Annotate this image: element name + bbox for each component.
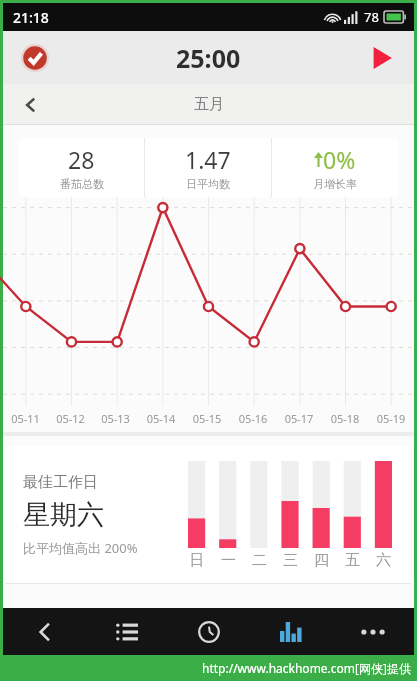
staticText: 28 <box>68 144 95 175</box>
button[interactable]: 28 <box>19 138 144 197</box>
button[interactable]: Timer <box>168 608 250 655</box>
button[interactable]: Pomodoro <box>13 36 57 80</box>
staticText: 日平均数 <box>186 177 230 191</box>
button[interactable]: Statistics <box>250 608 332 655</box>
staticText: 05-15 <box>184 411 230 426</box>
button[interactable]: List <box>86 608 168 655</box>
staticText: 五月 <box>194 95 224 114</box>
staticText: 月增长率 <box>313 177 357 191</box>
button[interactable]: More <box>332 608 414 655</box>
button[interactable]: Start timer <box>360 36 404 80</box>
button[interactable]: 1.47 <box>145 138 271 197</box>
staticText: 0% <box>323 144 356 175</box>
button[interactable]: Previous month <box>11 85 51 125</box>
staticText: 05-16 <box>230 411 276 426</box>
staticText: 05-12 <box>48 411 93 426</box>
staticText: 最佳工作日 <box>23 473 98 492</box>
staticText: 05-19 <box>368 411 414 426</box>
staticText: 05-18 <box>322 411 368 426</box>
staticText: 05-11 <box>3 411 48 426</box>
staticText: 五 <box>337 551 368 570</box>
staticText: 三 <box>275 551 306 570</box>
staticText: 05-14 <box>138 411 184 426</box>
staticText: 25:00 <box>176 41 241 75</box>
staticText: 四 <box>306 551 337 570</box>
staticText: 星期六 <box>23 498 104 532</box>
button[interactable]: 0% <box>272 138 398 197</box>
button[interactable]: 最佳工作日 <box>6 446 411 584</box>
staticText: 21:18 <box>13 8 49 27</box>
staticText: 78 <box>364 8 379 26</box>
staticText: 一 <box>213 551 244 570</box>
staticText: 番茄总数 <box>60 177 104 191</box>
staticText: 比平均值高出 200% <box>23 539 138 557</box>
staticText: 二 <box>244 551 275 570</box>
staticText: http://www.hackhome.com[网侠]提供 <box>202 660 411 676</box>
staticText: 05-17 <box>276 411 322 426</box>
staticText: 05-13 <box>93 411 138 426</box>
button[interactable]: Back <box>3 608 86 655</box>
staticText: 1.47 <box>185 144 231 175</box>
staticText: 日 <box>181 551 213 570</box>
staticText: 六 <box>368 551 399 570</box>
